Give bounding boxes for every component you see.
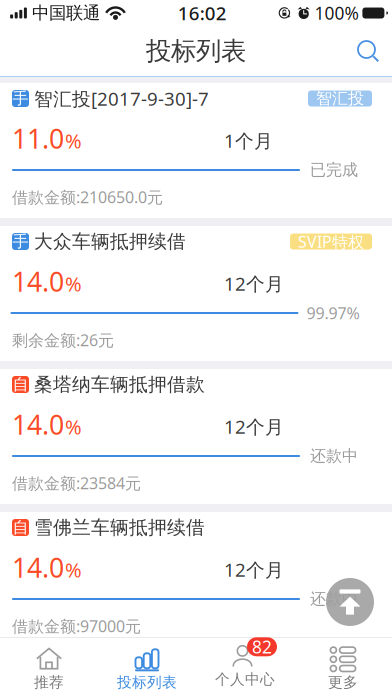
button[interactable]: 自 <box>0 512 392 647</box>
staticText: 14.0 <box>12 407 64 442</box>
button[interactable]: 投标列表 <box>98 637 196 696</box>
staticText: 1个月 <box>224 128 273 153</box>
staticText: 已完成 <box>310 160 358 180</box>
staticText: 借款金额:23584元 <box>12 472 141 494</box>
staticText: 中国联通 <box>32 2 100 24</box>
staticText: % <box>65 270 82 297</box>
staticText: 16:02 <box>178 1 227 25</box>
staticText: % <box>65 413 82 440</box>
staticText: 自 <box>12 375 28 394</box>
staticText: 11.0 <box>12 121 64 156</box>
button[interactable]: 82 <box>196 637 294 696</box>
button[interactable]: 搜索 <box>344 27 392 75</box>
staticText: 12个月 <box>224 271 284 296</box>
button[interactable]: 手 <box>0 226 392 361</box>
staticText: 投标列表 <box>117 673 177 691</box>
button[interactable]: 回到顶部 <box>326 578 374 626</box>
staticText: 还款中 <box>310 589 358 609</box>
staticText: 手 <box>12 89 28 108</box>
staticText: % <box>65 556 82 583</box>
staticText: SVIP特权 <box>298 231 364 252</box>
staticText: 桑塔纳车辆抵押借款 <box>34 373 205 396</box>
button[interactable]: 更多 <box>294 637 392 696</box>
staticText: 12个月 <box>224 557 284 582</box>
staticText: 投标列表 <box>146 35 246 66</box>
button[interactable]: 手 <box>0 83 392 218</box>
staticText: 借款金额:210650.0元 <box>12 186 163 208</box>
staticText: % <box>65 127 82 154</box>
staticText: 智汇投[2017-9-30]-7 <box>34 86 209 111</box>
staticText: 12个月 <box>224 414 284 439</box>
staticText: 14.0 <box>12 550 64 585</box>
staticText: 自 <box>12 518 28 537</box>
staticText: 大众车辆抵押续借 <box>34 230 186 253</box>
staticText: 剩余金额:26元 <box>12 329 114 351</box>
staticText: 82 <box>252 635 272 658</box>
staticText: 雪佛兰车辆抵押续借 <box>34 516 205 539</box>
staticText: 手 <box>12 232 28 251</box>
staticText: 99.97% <box>306 302 359 324</box>
staticText: 14.0 <box>12 264 64 299</box>
staticText: 还款中 <box>310 446 358 466</box>
staticText: 更多 <box>328 673 358 691</box>
button[interactable]: 自 <box>0 369 392 504</box>
staticText: 个人中心 <box>215 670 275 688</box>
staticText: 智汇投 <box>316 89 364 108</box>
staticText: 借款金额:97000元 <box>12 615 141 637</box>
button[interactable]: 推荐 <box>0 637 98 696</box>
staticText: 推荐 <box>34 673 64 691</box>
staticText: 100% <box>314 1 358 24</box>
